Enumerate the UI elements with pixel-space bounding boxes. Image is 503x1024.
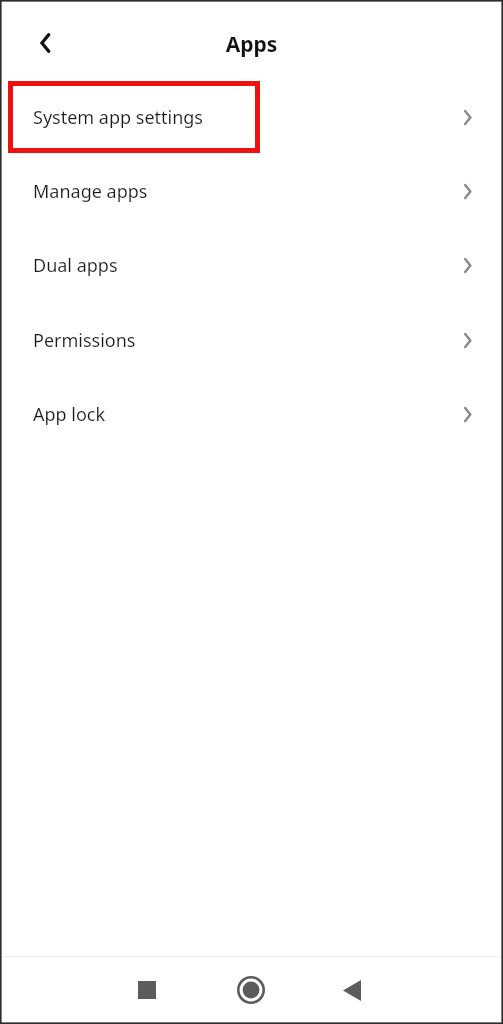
staticText: Apps bbox=[0, 30, 503, 59]
button[interactable]: System app settings bbox=[0, 80, 503, 154]
button[interactable]: Back bbox=[26, 24, 64, 62]
button[interactable]: App lock bbox=[0, 377, 503, 451]
staticText: App lock bbox=[33, 402, 106, 427]
staticText: Dual apps bbox=[33, 253, 118, 278]
button[interactable]: Home bbox=[227, 966, 275, 1014]
button[interactable]: Back bbox=[328, 966, 376, 1014]
button[interactable]: Permissions bbox=[0, 303, 503, 377]
button[interactable]: Dual apps bbox=[0, 228, 503, 303]
staticText: System app settings bbox=[33, 105, 203, 130]
button[interactable]: Recent apps bbox=[123, 966, 171, 1014]
staticText: Permissions bbox=[33, 328, 136, 353]
button[interactable]: Manage apps bbox=[0, 154, 503, 228]
staticText: Manage apps bbox=[33, 179, 148, 204]
